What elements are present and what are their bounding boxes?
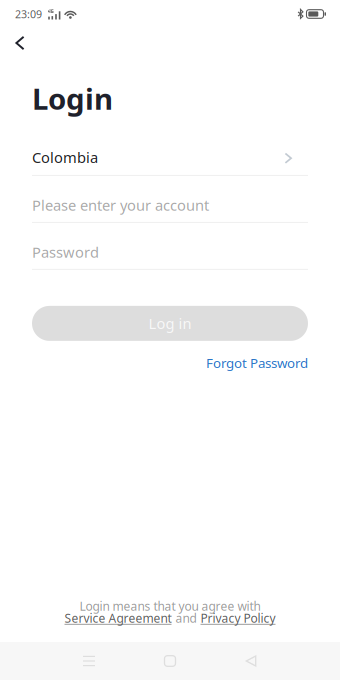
button[interactable]: Colombia [32,118,308,176]
staticText: and [175,610,196,626]
button[interactable]: Back [4,29,36,57]
staticText: Please enter your account [32,195,209,215]
button[interactable]: Recent apps [61,642,117,680]
staticText: Privacy Policy [200,610,275,626]
staticText: Forgot Password [206,354,308,372]
staticText: Colombia [32,147,98,167]
button[interactable]: Privacy Policy [200,610,275,626]
button[interactable]: Log in [32,306,308,341]
staticText: Service Agreement [64,610,171,626]
button[interactable]: Service Agreement [64,610,171,626]
staticText: 23:09 [15,7,42,21]
staticText: Login means that you agree with [79,598,260,614]
button[interactable]: Back [223,642,279,680]
button[interactable]: Home [142,642,198,680]
staticText: Log in [148,314,191,333]
button[interactable]: Forgot Password [32,352,308,374]
staticText: Login [32,79,113,118]
staticText: Password [32,242,99,262]
button[interactable]: Password [32,223,308,270]
button[interactable]: Please enter your account [32,176,308,223]
